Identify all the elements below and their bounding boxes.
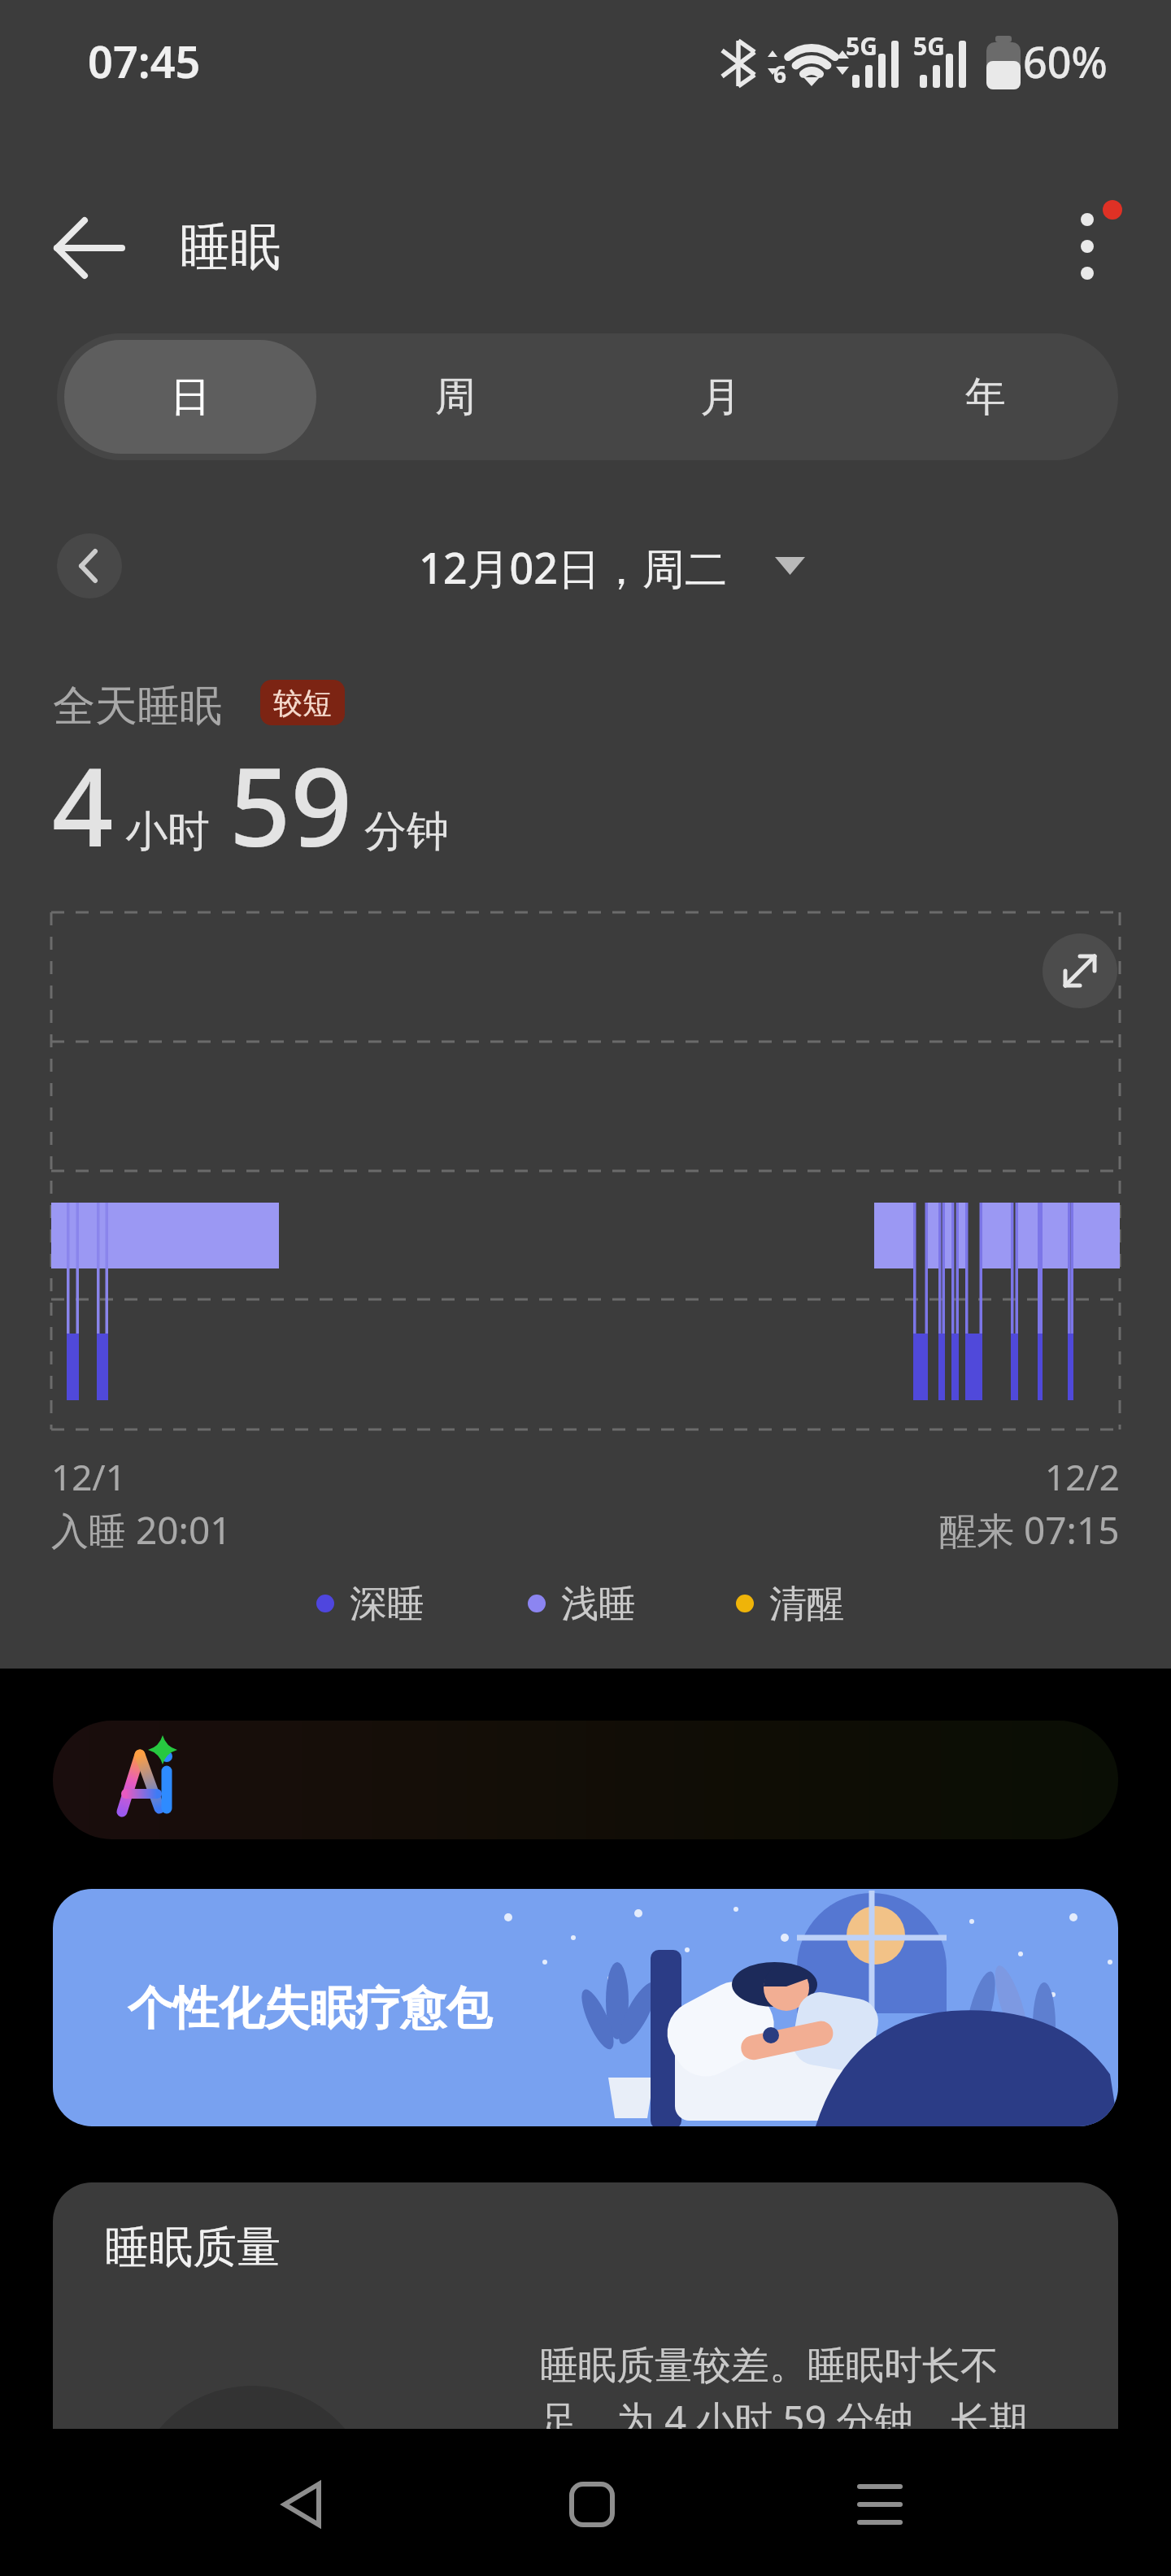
staticText: 较短 (273, 685, 332, 721)
staticText: 睡眠质量 (105, 2220, 281, 2275)
staticText: 分钟 (364, 805, 449, 859)
button[interactable]: 月 (588, 333, 853, 460)
button[interactable] (57, 533, 122, 598)
button[interactable] (551, 2464, 632, 2545)
staticText: 清醒 (769, 1581, 844, 1628)
staticText: 日 (170, 372, 211, 423)
staticText: 60% (1023, 33, 1108, 90)
button[interactable]: 日 (57, 333, 323, 460)
staticText: 个性化失眠疗愈包 (128, 1980, 492, 2038)
staticText: 睡眠 (180, 215, 281, 279)
staticText: 12月02日，周二 (419, 538, 727, 595)
button[interactable] (1043, 933, 1117, 1008)
staticText: 12/1 (51, 1452, 126, 1501)
staticText: 59 (229, 732, 353, 878)
staticText: 入睡 20:01 (51, 1504, 232, 1556)
button[interactable]: 睡眠质量 (53, 2182, 1118, 2475)
staticText: 4 (52, 732, 114, 878)
staticText: 小时 (125, 805, 210, 859)
staticText: 浅睡 (561, 1581, 636, 1628)
staticText: 月 (700, 372, 741, 423)
button[interactable] (260, 2464, 342, 2545)
staticText: 年 (965, 372, 1006, 423)
staticText: 07:45 (88, 31, 201, 91)
button[interactable] (53, 1721, 1118, 1839)
button[interactable] (838, 2464, 919, 2545)
staticText: 醒来 07:15 (939, 1504, 1120, 1556)
staticText: 12/2 (1045, 1452, 1120, 1501)
staticText: 6 (773, 59, 787, 89)
staticText: 睡眠质量较差。睡眠时长不足，为 4 小时 59 分钟。长期 (540, 2342, 1069, 2445)
button[interactable]: 年 (853, 333, 1118, 460)
staticText: 周 (435, 372, 476, 423)
button[interactable]: 12月02日，周二 (0, 538, 1158, 595)
button[interactable] (45, 211, 134, 285)
staticText: 深睡 (350, 1581, 424, 1628)
button[interactable]: 个性化失眠疗愈包 (53, 1889, 1118, 2126)
staticText: 5G (913, 29, 945, 63)
button[interactable] (1049, 195, 1138, 293)
staticText: 全天睡眠 (53, 680, 222, 733)
staticText: 5G (846, 29, 877, 63)
button[interactable]: 周 (323, 333, 588, 460)
